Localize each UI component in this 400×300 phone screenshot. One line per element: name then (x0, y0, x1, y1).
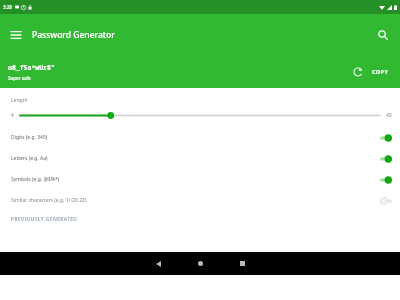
staticText: Super safe (8, 75, 31, 81)
button[interactable]: COPY (368, 64, 393, 79)
staticText: Symbols (e.g. @$%*) (11, 176, 60, 183)
button[interactable]: Regenerate password (348, 62, 368, 82)
button[interactable]: Similar characters (e.g. 1l O0 2Z) (0, 190, 400, 211)
staticText: 3:28 (3, 4, 12, 10)
button[interactable]: Home (185, 252, 215, 275)
staticText: u8_f5a*wUr8" (8, 63, 55, 72)
staticText: 40 (386, 112, 392, 119)
staticText: Digits (e.g. 345) (11, 134, 48, 141)
staticText: COPY (372, 68, 389, 75)
staticText: 4 (11, 112, 14, 119)
button[interactable]: Search (372, 24, 394, 46)
staticText: Password Generator (32, 29, 115, 41)
button[interactable]: Letters (e.g. Aa) (0, 148, 400, 169)
button[interactable]: Back (143, 252, 173, 275)
button[interactable]: Recent apps (227, 252, 257, 275)
staticText: Similar characters (e.g. 1l O0 2Z) (11, 197, 87, 204)
button[interactable]: 4 (0, 109, 400, 122)
button[interactable]: Open navigation menu (5, 24, 27, 46)
staticText: Letters (e.g. Aa) (11, 155, 48, 162)
button[interactable]: Digits (e.g. 345) (0, 127, 400, 148)
button[interactable]: Symbols (e.g. @$%*) (0, 169, 400, 190)
staticText: PREVIOUSLY GENERATED (11, 216, 78, 223)
staticText: Length (11, 97, 28, 104)
